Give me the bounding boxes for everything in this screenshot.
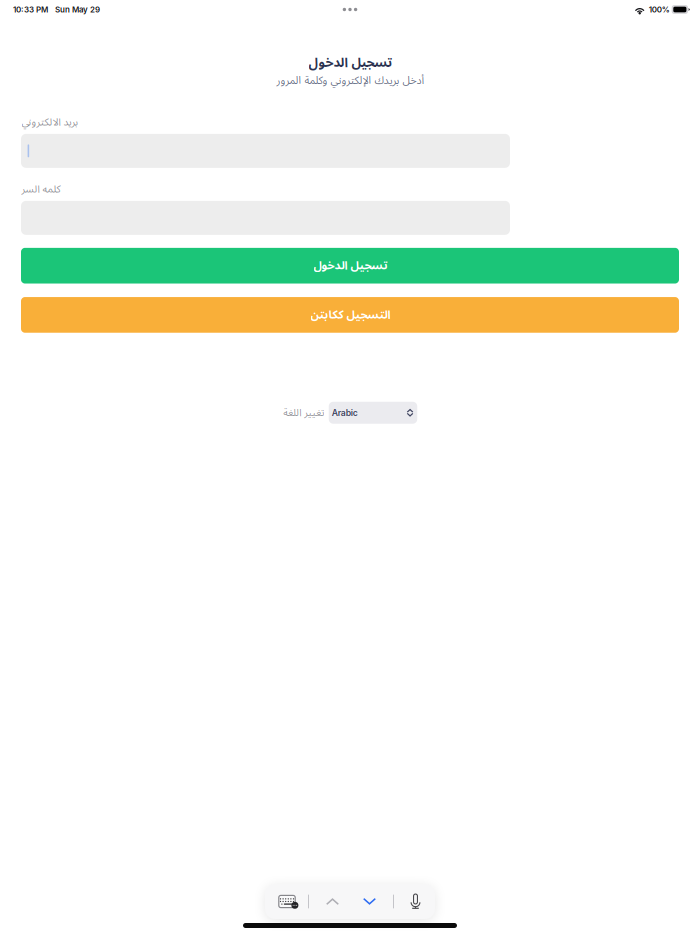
- button[interactable]: Previous Field: [314, 884, 351, 919]
- staticText: تغيير اللغة: [283, 402, 324, 423]
- staticText: أدخل بريدك الإلكتروني وكلمة المرور: [276, 69, 424, 92]
- staticText: Arabic: [332, 407, 358, 418]
- staticText: تسجيل الدخول: [308, 49, 392, 76]
- staticText: 100%: [649, 5, 670, 14]
- button[interactable]: Show Keyboard: [271, 884, 303, 919]
- staticText: Sun May 29: [55, 5, 100, 14]
- button[interactable]: Next Field: [351, 884, 388, 919]
- button[interactable]: Arabic: [329, 402, 417, 424]
- button[interactable]: تسجيل الدخول: [21, 248, 679, 283]
- staticText: تسجيل الدخول: [313, 254, 387, 278]
- button[interactable]: التسجيل ككابتن: [21, 297, 679, 333]
- staticText: بريد الالكتروني: [21, 112, 78, 133]
- button[interactable]: Dictate: [399, 884, 432, 919]
- staticText: كلمه السر: [21, 179, 60, 200]
- staticText: 10:33 PM: [13, 5, 48, 14]
- staticText: التسجيل ككابتن: [310, 303, 390, 327]
